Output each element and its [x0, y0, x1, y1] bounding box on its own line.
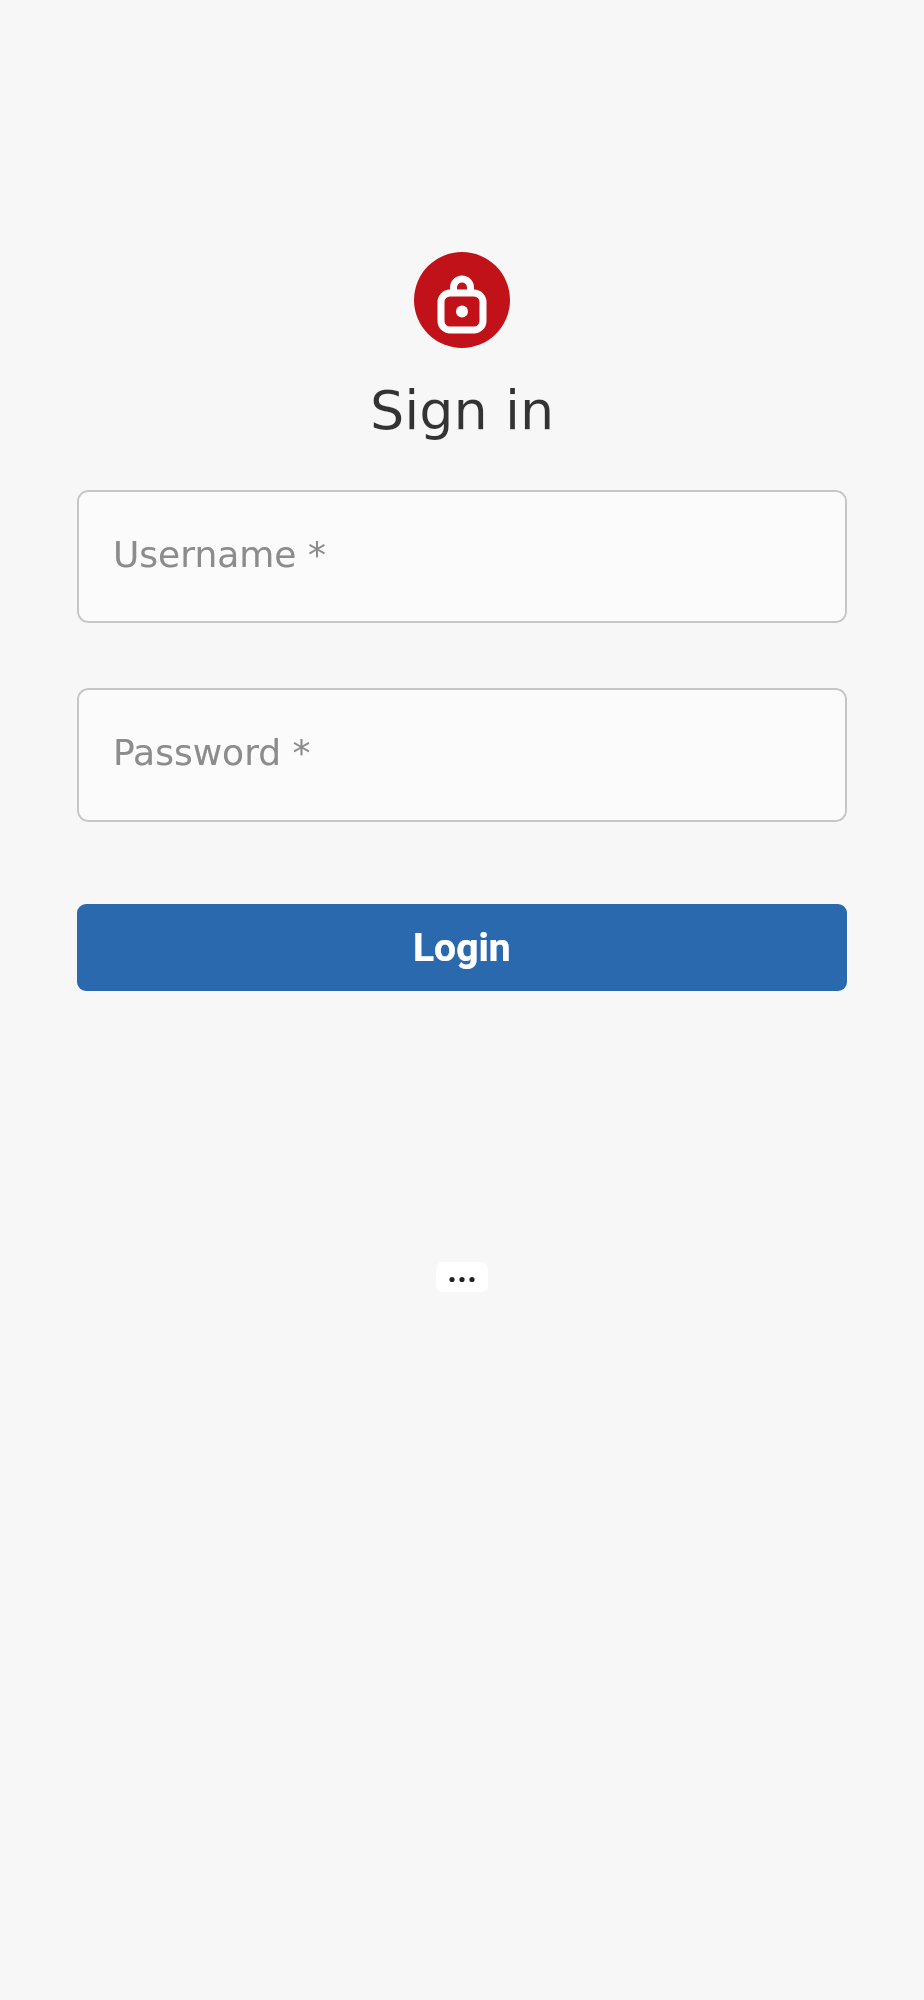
staticText: Password * — [113, 732, 311, 774]
button[interactable]: Login — [77, 904, 847, 991]
staticText: Login — [413, 925, 511, 971]
staticText: Username * — [113, 534, 326, 576]
button[interactable]: Password * — [77, 688, 847, 822]
button[interactable]: Username * — [77, 490, 847, 623]
staticText: Sign in — [370, 379, 555, 442]
